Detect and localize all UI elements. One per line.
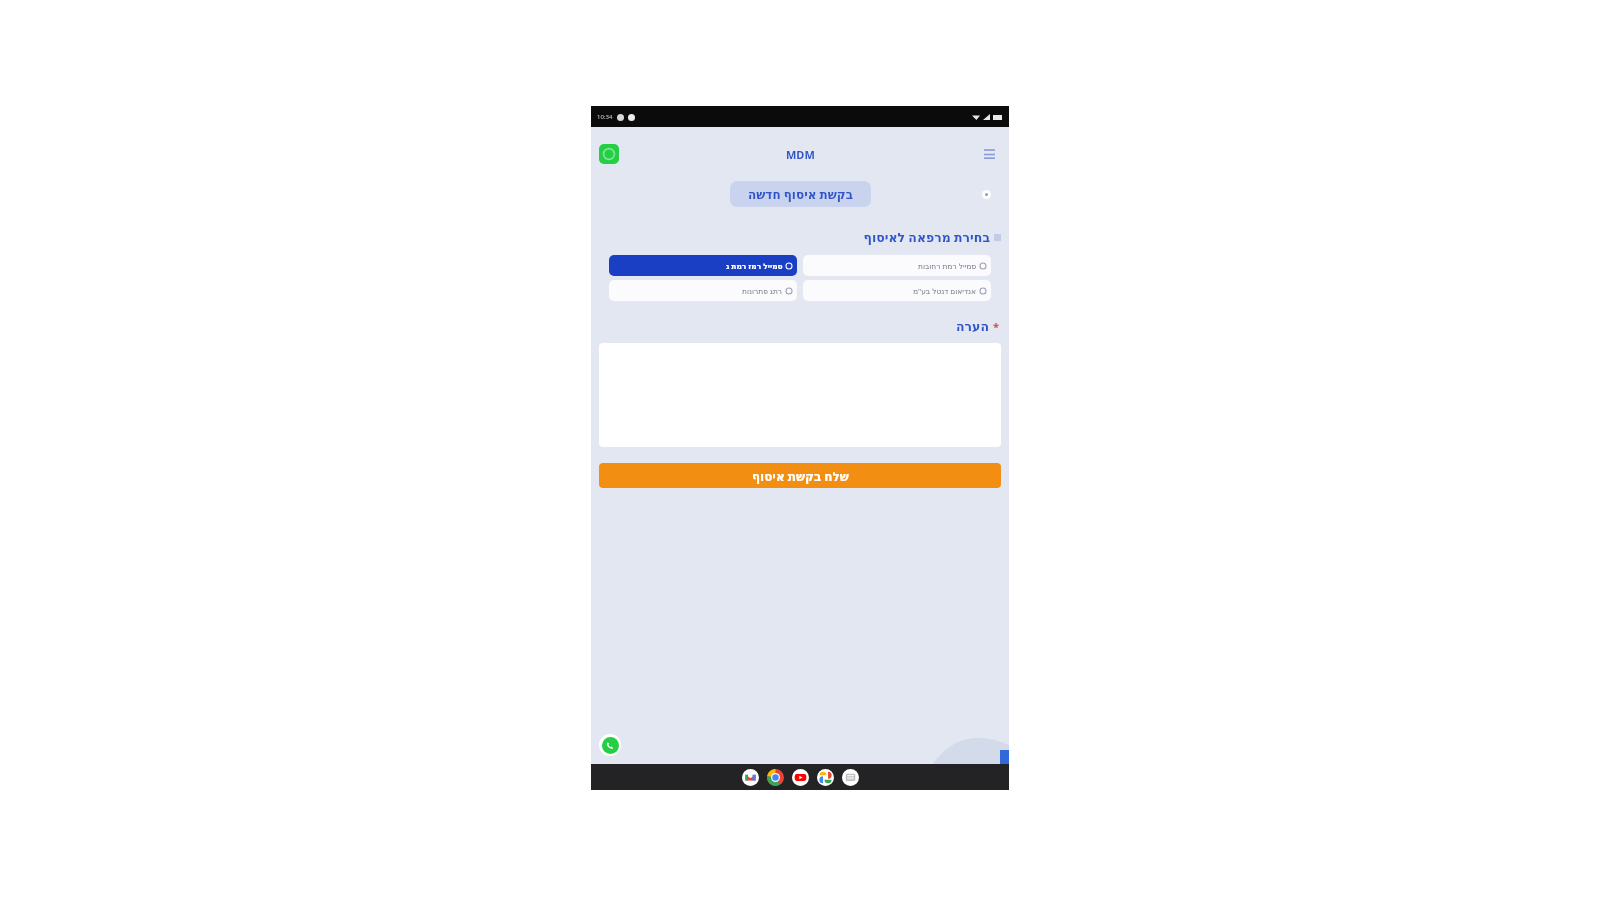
button[interactable]: WhatsApp xyxy=(599,144,619,164)
button[interactable]: סמייל רמז רמת ג xyxy=(609,255,797,276)
button[interactable]: YouTube xyxy=(792,769,809,786)
staticText: בחירת מרפאה לאיסוף xyxy=(863,229,990,246)
button[interactable]: Gmail xyxy=(742,769,759,786)
button[interactable]: Options xyxy=(982,190,991,199)
button[interactable]: Menu xyxy=(981,146,997,162)
button[interactable]: רתג פתרונות xyxy=(609,280,797,301)
button[interactable]: סמייל רמת רחובות xyxy=(803,255,991,276)
staticText: שלח בקשת איסוף xyxy=(752,468,849,484)
button[interactable]: Messages xyxy=(842,769,859,786)
button[interactable]: אנדיאום דנטל בע"מ xyxy=(803,280,991,301)
staticText: אנדיאום דנטל בע"מ xyxy=(913,286,977,296)
staticText: סמייל רמז רמת ג xyxy=(726,261,783,271)
staticText: * xyxy=(993,319,999,334)
button[interactable]: בקשת איסוף חדשה xyxy=(730,181,871,207)
staticText: MDM xyxy=(786,147,815,162)
button[interactable]: Photos xyxy=(817,769,834,786)
staticText: סמייל רמת רחובות xyxy=(918,261,977,271)
staticText: 10:34 xyxy=(597,113,613,121)
staticText: בקשת איסוף חדשה xyxy=(748,186,853,202)
staticText: רתג פתרונות xyxy=(742,286,783,296)
button[interactable]: שלח בקשת איסוף xyxy=(599,463,1001,488)
button[interactable]: Chat on WhatsApp xyxy=(599,734,621,756)
staticText: הערה xyxy=(956,319,990,334)
button[interactable]: Chrome xyxy=(767,769,784,786)
